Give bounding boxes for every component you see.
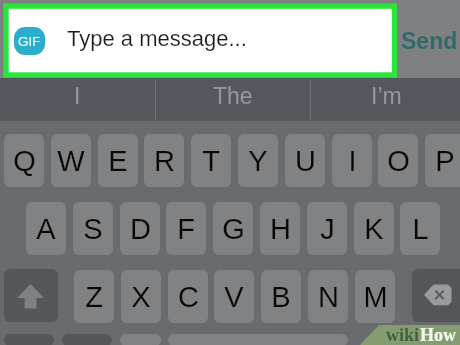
staticText: Q <box>13 145 36 177</box>
staticText: C <box>178 281 199 313</box>
staticText: G <box>222 213 245 245</box>
staticText: W <box>57 145 85 177</box>
staticText: R <box>154 145 175 177</box>
staticText: O <box>387 145 410 177</box>
staticText: I <box>348 145 357 177</box>
button[interactable]: C <box>168 270 208 323</box>
staticText: B <box>271 281 291 313</box>
button[interactable]: U <box>285 134 325 187</box>
staticText: How <box>420 325 456 345</box>
staticText: wiki <box>386 325 420 345</box>
staticText: V <box>224 281 244 313</box>
staticText: M <box>363 281 388 313</box>
button[interactable]: E <box>98 134 138 187</box>
button[interactable]: L <box>400 202 440 255</box>
staticText: I’m <box>371 83 402 109</box>
staticText: L <box>412 213 429 245</box>
staticText: F <box>177 213 195 245</box>
button[interactable]: N <box>308 270 348 323</box>
staticText: J <box>320 213 335 245</box>
staticText: X <box>131 281 151 313</box>
button[interactable]: I’m <box>313 71 460 121</box>
staticText: U <box>295 145 316 177</box>
button[interactable]: J <box>307 202 347 255</box>
button[interactable]: O <box>378 134 418 187</box>
staticText: GIF <box>18 34 41 49</box>
button[interactable]: X <box>121 270 161 323</box>
staticText: I <box>74 83 81 109</box>
button[interactable]: Dictation <box>120 334 161 345</box>
button[interactable]: Q <box>4 134 44 187</box>
button[interactable]: S <box>73 202 113 255</box>
button[interactable]: I <box>0 71 154 121</box>
button[interactable]: K <box>354 202 394 255</box>
staticText: S <box>83 213 103 245</box>
button[interactable]: D <box>120 202 160 255</box>
staticText: Z <box>85 281 103 313</box>
staticText: E <box>108 145 128 177</box>
button[interactable]: Y <box>238 134 278 187</box>
button[interactable]: V <box>214 270 254 323</box>
button[interactable]: Shift <box>4 269 58 322</box>
staticText: P <box>435 145 455 177</box>
button[interactable]: T <box>191 134 231 187</box>
staticText: A <box>36 213 56 245</box>
staticText: The <box>213 83 253 109</box>
button[interactable]: R <box>144 134 184 187</box>
staticText: T <box>202 145 220 177</box>
staticText: K <box>364 213 384 245</box>
staticText: N <box>318 281 339 313</box>
button[interactable]: W <box>51 134 91 187</box>
button[interactable]: P <box>425 134 460 187</box>
staticText: D <box>130 213 151 245</box>
button[interactable]: F <box>166 202 206 255</box>
staticText: H <box>270 213 291 245</box>
button[interactable]: M <box>355 270 395 323</box>
button[interactable]: The <box>156 71 310 121</box>
button[interactable]: I <box>332 134 372 187</box>
button[interactable]: H <box>260 202 300 255</box>
button[interactable]: Numbers and symbols <box>4 334 54 345</box>
staticText: Y <box>248 145 268 177</box>
staticText: Send <box>401 28 458 54</box>
button[interactable]: Backspace <box>412 269 460 322</box>
button[interactable]: B <box>261 270 301 323</box>
button[interactable]: Emoji <box>62 334 112 345</box>
button[interactable]: Insert GIF <box>14 27 45 55</box>
staticText: Type a message... <box>67 26 247 51</box>
button[interactable]: G <box>213 202 253 255</box>
button[interactable]: Send <box>398 4 460 77</box>
button[interactable]: Insert GIF <box>4 4 397 77</box>
button[interactable]: A <box>26 202 66 255</box>
button[interactable]: Z <box>74 270 114 323</box>
